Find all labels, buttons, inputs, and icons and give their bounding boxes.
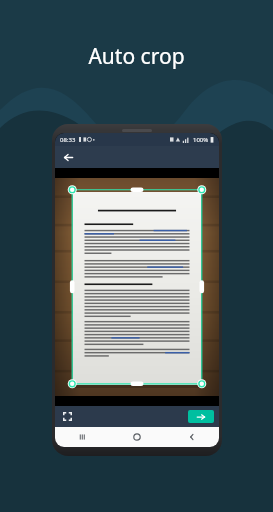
button[interactable]: Back — [59, 148, 77, 166]
staticText: Auto crop — [88, 42, 185, 71]
button[interactable]: Home — [127, 427, 147, 447]
button[interactable]: Expand crop to full page — [59, 408, 76, 425]
staticText: 08:33 — [60, 136, 76, 144]
button[interactable]: Recents — [72, 427, 92, 447]
button[interactable]: Back — [182, 427, 202, 447]
button[interactable]: Next — [188, 410, 214, 423]
staticText: 100% — [193, 136, 209, 144]
